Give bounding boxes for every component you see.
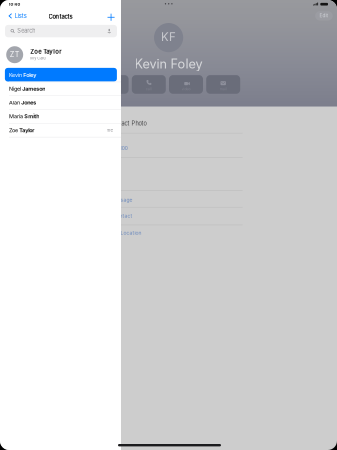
staticText: Contacts [48, 13, 72, 20]
button[interactable]: Add contact [103, 10, 119, 25]
staticText: Jones [21, 99, 36, 106]
staticText: My Card [30, 56, 45, 60]
staticText: Kevin Foley [134, 56, 202, 71]
staticText: Add Contact Photo [97, 120, 146, 127]
button[interactable]: Kevin [0, 68, 121, 81]
staticText: video [181, 87, 190, 91]
button[interactable]: Alan [0, 95, 121, 109]
button[interactable]: Maria [0, 109, 121, 123]
staticText: Zoe Taylor [30, 48, 61, 55]
staticText: Send Message [97, 197, 132, 203]
button[interactable]: ZT [0, 45, 121, 67]
button[interactable]: Edit [315, 11, 333, 20]
staticText: Share Contact [97, 213, 132, 219]
button[interactable]: message [95, 75, 129, 94]
staticText: Zoe [9, 127, 18, 133]
staticText: Foley [23, 72, 36, 78]
button[interactable]: Zoe [0, 123, 121, 137]
staticText: me [106, 128, 112, 133]
staticText: Nigel [9, 85, 21, 92]
staticText: Alan [9, 99, 20, 106]
button[interactable]: video [169, 75, 203, 94]
staticText: Jameson [22, 85, 45, 92]
staticText: ZT [10, 50, 20, 59]
button[interactable]: Nigel [0, 82, 121, 95]
staticText: Edit [319, 13, 328, 18]
staticText: Share My Location [97, 230, 141, 236]
button[interactable]: call [132, 75, 166, 94]
staticText: Search [17, 27, 35, 34]
staticText: Smith [24, 113, 39, 120]
button[interactable]: mail [206, 75, 240, 94]
staticText: Kevin [9, 72, 22, 78]
staticText: Maria [9, 113, 23, 120]
staticText: (555) 555-0100 [92, 145, 128, 151]
button[interactable]: Lists [0, 0, 34, 15]
staticText: Taylor [19, 127, 34, 133]
staticText: Lists [15, 12, 27, 19]
staticText: 10:40 [9, 2, 21, 7]
staticText: KF [161, 30, 176, 44]
